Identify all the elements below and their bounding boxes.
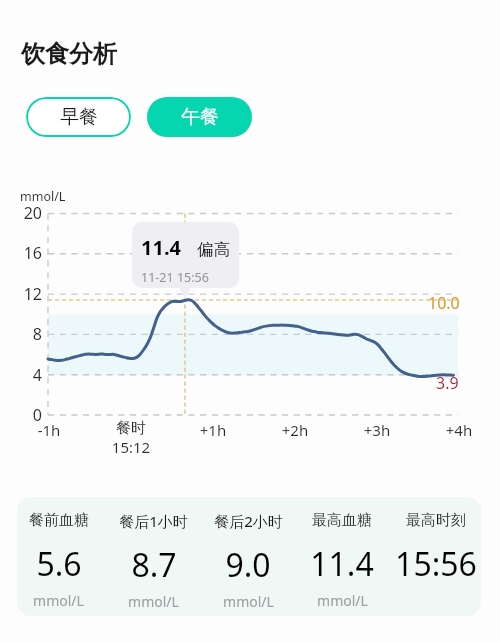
staticText: mmol/L [223,592,274,611]
staticText: 餐后1小时 [119,511,188,531]
staticText: 4 [2,364,42,386]
staticText: +1h [173,420,253,440]
staticText: 餐时 [91,419,171,438]
staticText: 12 [2,283,42,305]
staticText: 9.0 [225,543,271,587]
staticText: mmol/L [20,188,66,205]
staticText: mmol/L [33,591,84,610]
button[interactable]: 早餐 [26,97,131,137]
staticText: 11-21 15:56 [141,269,209,286]
staticText: 15:12 [91,437,171,457]
staticText: +4h [419,420,499,440]
button[interactable]: 餐后1小时 [106,497,201,616]
staticText: +2h [255,420,335,440]
staticText: mmol/L [128,592,179,611]
button[interactable]: 餐前血糖 [11,497,106,616]
staticText: 餐前血糖 [29,511,89,530]
button[interactable]: 最高时刻 [389,497,483,616]
staticText: 20 [2,202,42,224]
staticText: 最高时刻 [406,511,466,530]
button[interactable]: 最高血糖 [295,497,389,616]
staticText: 最高血糖 [312,511,372,530]
button[interactable]: 午餐 [147,97,252,137]
button[interactable]: 餐后2小时 [201,497,295,616]
staticText: 11.4 [310,542,374,586]
staticText: 午餐 [181,105,219,129]
staticText: 饮食分析 [21,39,117,69]
staticText: 3.9 [436,372,459,394]
staticText: 8 [2,323,42,345]
staticText: 餐后2小时 [214,511,283,531]
staticText: 5.6 [36,542,82,586]
staticText: 8.7 [131,543,177,587]
staticText: mmol/L [317,591,368,610]
staticText: 16 [2,242,42,264]
staticText: +3h [337,420,417,440]
staticText: 早餐 [60,105,98,129]
staticText: -1h [9,420,89,440]
staticText: 10.0 [428,292,460,314]
staticText: 11.4 [141,234,181,261]
staticText: 0 [2,404,42,426]
staticText: 偏高 [197,239,230,260]
staticText: 15:56 [395,542,477,586]
